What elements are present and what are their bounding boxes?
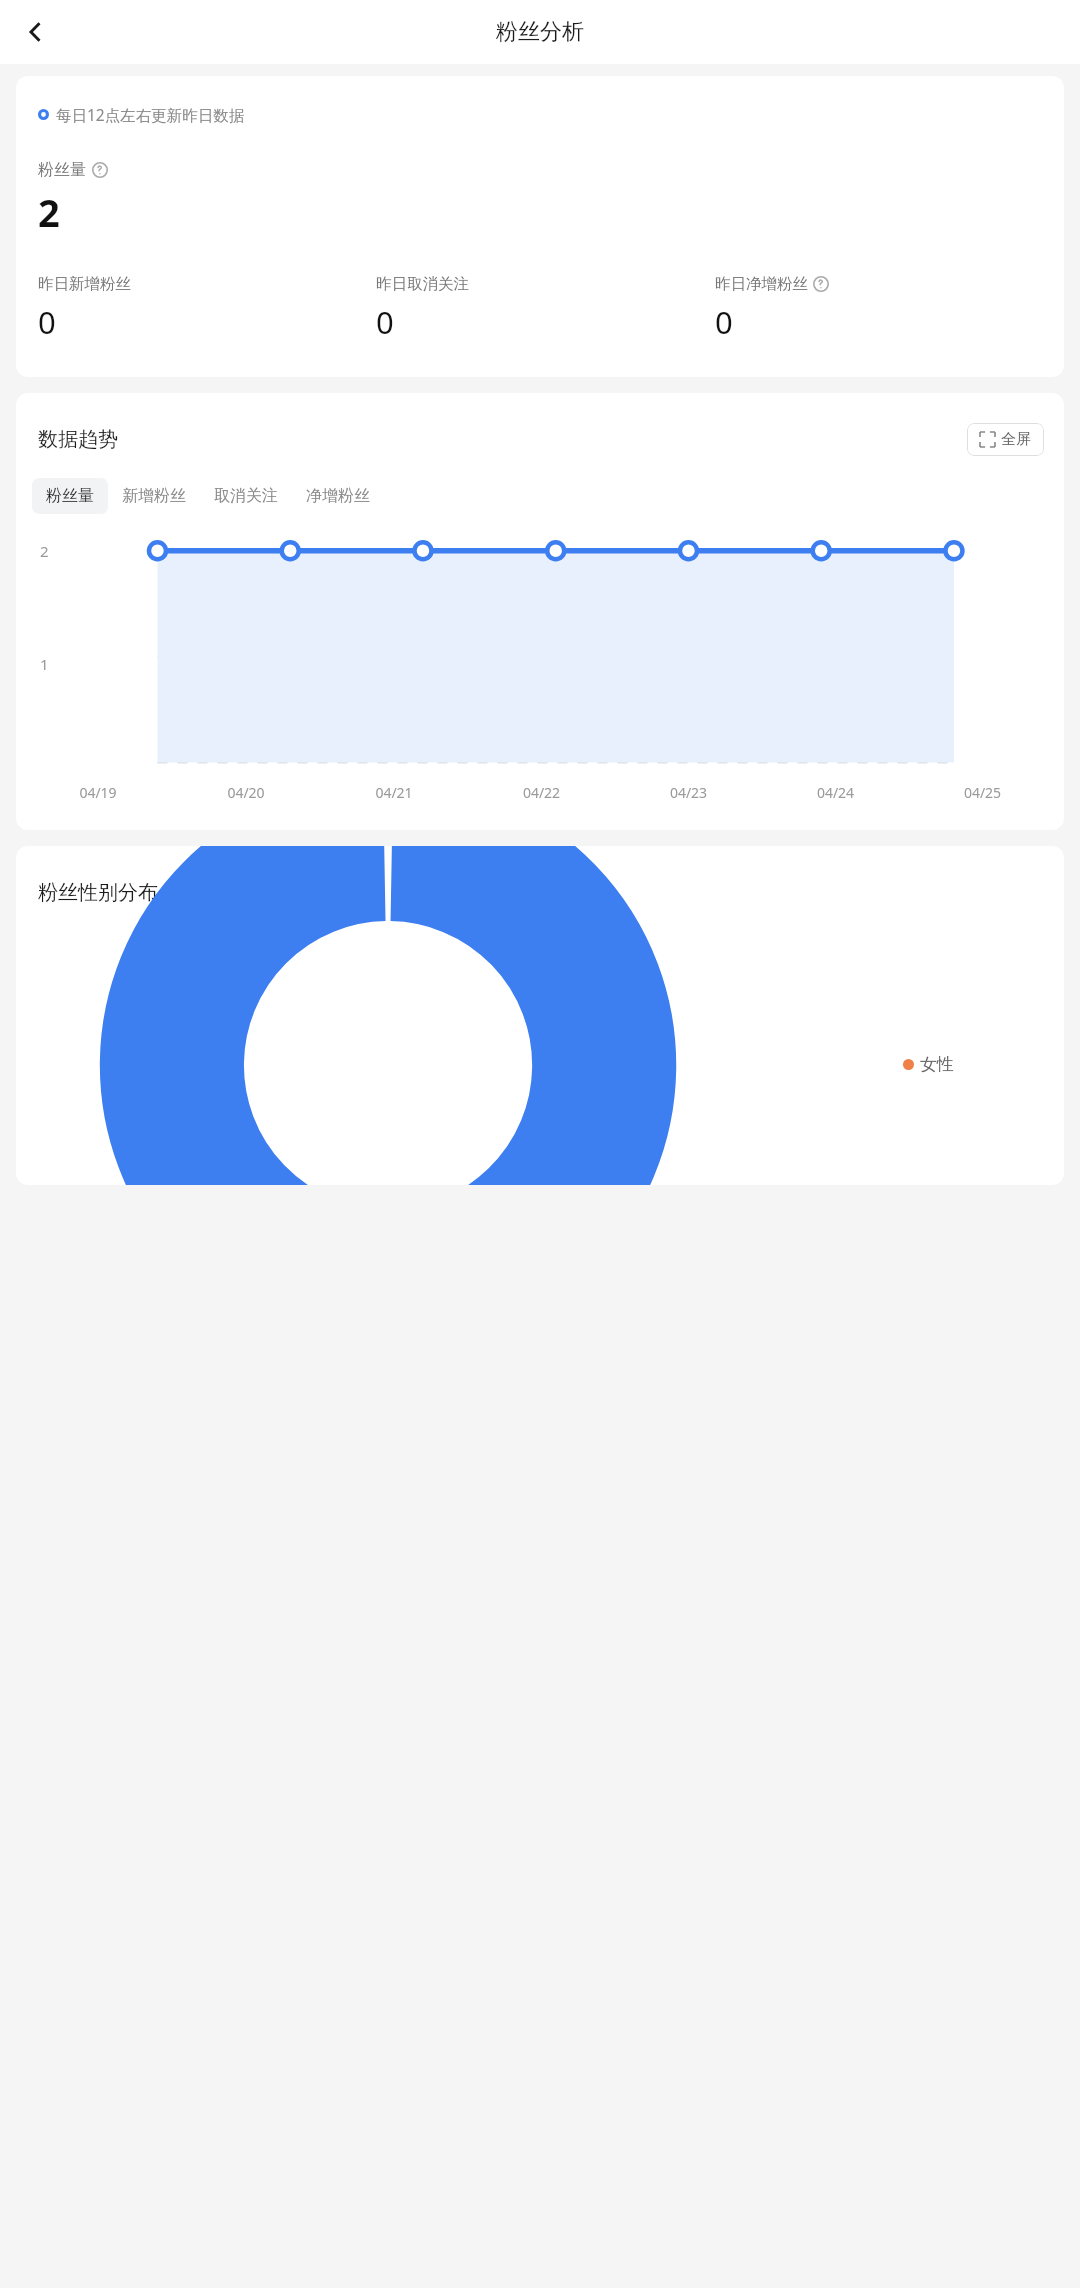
button[interactable]: 全屏 xyxy=(967,423,1044,456)
staticText: 04/20 xyxy=(172,783,320,802)
staticText: 新增粉丝 xyxy=(122,486,186,506)
staticText: 04/24 xyxy=(762,783,909,802)
button[interactable]: 净增粉丝 xyxy=(292,478,384,514)
staticText: 数据趋势 xyxy=(38,427,118,452)
staticText: 粉丝性别分布 xyxy=(38,880,158,905)
button[interactable]: 昨日取消关注 xyxy=(376,274,715,343)
button[interactable]: 粉丝量 xyxy=(32,478,108,514)
button[interactable]: Back xyxy=(14,10,58,54)
staticText: 0 xyxy=(715,301,733,343)
staticText: 全屏 xyxy=(1001,430,1031,449)
staticText: 0 xyxy=(376,301,394,343)
staticText: 04/23 xyxy=(615,783,762,802)
staticText: 昨日净增粉丝 xyxy=(715,274,808,294)
button[interactable]: 取消关注 xyxy=(200,478,292,514)
staticText: 04/21 xyxy=(320,783,468,802)
staticText: 女性 xyxy=(920,1054,954,1075)
button[interactable]: 昨日新增粉丝 xyxy=(38,274,376,343)
staticText: 粉丝量 xyxy=(38,160,86,180)
staticText: 净增粉丝 xyxy=(306,486,370,506)
staticText: 每日12点左右更新昨日数据 xyxy=(56,104,245,125)
staticText: 粉丝分析 xyxy=(496,18,584,46)
staticText: 0 xyxy=(38,301,56,343)
button[interactable]: 女性 xyxy=(903,1054,954,1075)
button[interactable]: 昨日净增粉丝 xyxy=(715,274,1054,343)
staticText: 昨日取消关注 xyxy=(376,274,469,294)
staticText: 1 xyxy=(40,654,49,674)
staticText: 2 xyxy=(40,541,49,561)
staticText: 粉丝量 xyxy=(46,486,94,506)
staticText: 昨日新增粉丝 xyxy=(38,274,131,294)
staticText: 取消关注 xyxy=(214,486,278,506)
staticText: 04/25 xyxy=(909,783,1056,802)
staticText: 2 xyxy=(38,186,60,238)
button[interactable]: 新增粉丝 xyxy=(108,478,200,514)
staticText: 04/19 xyxy=(24,783,172,802)
staticText: 04/22 xyxy=(468,783,615,802)
